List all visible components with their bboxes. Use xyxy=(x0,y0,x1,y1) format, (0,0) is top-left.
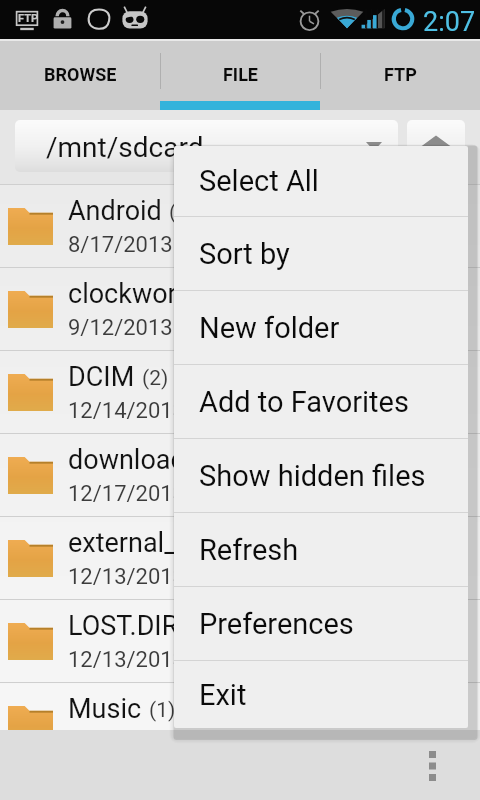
staticText: 12/14/2013 xyxy=(68,398,186,424)
button[interactable]: LOST.DIR xyxy=(0,600,480,682)
button[interactable]: /mnt/sdcard xyxy=(15,120,398,172)
staticText: FTP xyxy=(384,64,417,85)
button[interactable]: download xyxy=(0,434,480,516)
staticText: (2) xyxy=(169,200,196,225)
button[interactable]: Show hidden files xyxy=(174,439,468,512)
staticText: (9) xyxy=(213,532,240,557)
button[interactable]: BROWSE xyxy=(0,41,160,110)
staticText: Exit xyxy=(199,678,247,712)
button[interactable]: Android xyxy=(0,185,480,267)
staticText: DCIM xyxy=(68,361,135,393)
button[interactable]: Exit xyxy=(174,661,468,728)
staticText: clockworkmod xyxy=(68,278,245,310)
staticText: 8/17/2013 xyxy=(68,232,173,258)
staticText: Preferences xyxy=(199,607,354,641)
staticText: Music xyxy=(68,693,142,725)
button[interactable]: Music xyxy=(0,683,480,765)
button[interactable]: FTP xyxy=(320,41,480,110)
button[interactable]: More options xyxy=(408,742,456,790)
button[interactable]: Sort by xyxy=(174,217,468,290)
button[interactable]: FILE xyxy=(160,41,320,110)
staticText: (2) xyxy=(142,366,169,391)
staticText: 12/17/2013 xyxy=(68,481,186,507)
button[interactable]: Up one level xyxy=(407,120,465,172)
staticText: BROWSE xyxy=(44,64,117,85)
staticText: (0) xyxy=(186,615,213,640)
staticText: 2:07 xyxy=(423,6,476,38)
staticText: 9/12/2013 xyxy=(68,315,173,341)
staticText: Select All xyxy=(199,164,319,198)
staticText: 12/13/2013 xyxy=(68,647,186,673)
button[interactable]: external_sd xyxy=(0,517,480,599)
staticText: FTP xyxy=(18,12,39,25)
staticText: New folder xyxy=(199,311,340,345)
button[interactable]: Refresh xyxy=(174,513,468,586)
staticText: FILE xyxy=(223,64,258,85)
button[interactable]: clockworkmod xyxy=(0,268,480,350)
staticText: Android xyxy=(68,195,162,227)
button[interactable]: Preferences xyxy=(174,587,468,660)
staticText: download xyxy=(68,444,186,476)
staticText: /mnt/sdcard xyxy=(46,131,204,164)
staticText: Add to Favorites xyxy=(199,385,409,419)
staticText: 12/13/2013 xyxy=(68,730,186,756)
button[interactable]: Add to Favorites xyxy=(174,365,468,438)
staticText: Sort by xyxy=(199,237,290,271)
staticText: (5) xyxy=(252,283,279,308)
button[interactable]: Select All xyxy=(174,146,468,216)
staticText: (1) xyxy=(149,698,176,723)
staticText: external_sd xyxy=(68,527,206,559)
staticText: LOST.DIR xyxy=(68,610,179,642)
button[interactable]: New folder xyxy=(174,291,468,364)
button[interactable]: DCIM xyxy=(0,351,480,433)
staticText: Show hidden files xyxy=(199,459,426,493)
staticText: (3) xyxy=(193,449,220,474)
staticText: Refresh xyxy=(199,533,299,567)
staticText: 12/13/2013 xyxy=(68,564,186,590)
